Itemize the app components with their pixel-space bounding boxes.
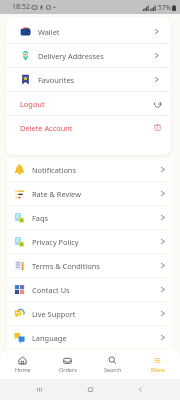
staticText: Favourites <box>38 75 75 85</box>
button[interactable]: Logout <box>6 92 171 115</box>
button[interactable]: More <box>135 350 180 379</box>
button[interactable]: Orders <box>45 350 90 379</box>
button[interactable]: Language <box>7 327 171 348</box>
staticText: Wallet <box>38 27 60 37</box>
staticText: Home <box>15 366 31 373</box>
staticText: Search <box>104 366 122 373</box>
button[interactable]: Home <box>0 350 45 379</box>
staticText: More <box>151 366 165 373</box>
button[interactable]: Delete Account <box>6 116 171 139</box>
button[interactable]: Delivery Addresses <box>6 44 171 67</box>
button[interactable]: Live Support <box>7 303 171 324</box>
button[interactable]: Favourites <box>6 68 171 91</box>
staticText: Terms & Conditions <box>32 261 100 271</box>
staticText: Language <box>32 333 67 343</box>
staticText: Live Support <box>32 309 76 319</box>
staticText: Contact Us <box>32 285 70 295</box>
button[interactable]: Wallet <box>6 17 171 43</box>
button[interactable]: Notifications <box>7 159 171 180</box>
staticText: Faqs <box>32 213 49 223</box>
staticText: Notifications <box>32 165 76 175</box>
button[interactable]: Terms & Conditions <box>7 255 171 276</box>
staticText: Orders <box>59 366 77 373</box>
staticText: Privacy Policy <box>32 237 79 247</box>
button[interactable]: Rate & Review <box>7 183 171 204</box>
staticText: 18:52 <box>12 2 30 12</box>
button[interactable]: Contact Us <box>7 279 171 300</box>
staticText: Delete Account <box>20 123 73 133</box>
staticText: 57% <box>158 3 171 12</box>
other: Delete Account <box>152 122 163 133</box>
button[interactable]: Faqs <box>7 207 171 228</box>
other: Logout <box>152 98 163 109</box>
staticText: Logout <box>20 99 45 109</box>
button[interactable]: Privacy Policy <box>7 231 171 252</box>
staticText: Delivery Addresses <box>38 51 104 61</box>
staticText: Rate & Review <box>32 189 81 199</box>
button[interactable]: Search <box>90 350 135 379</box>
